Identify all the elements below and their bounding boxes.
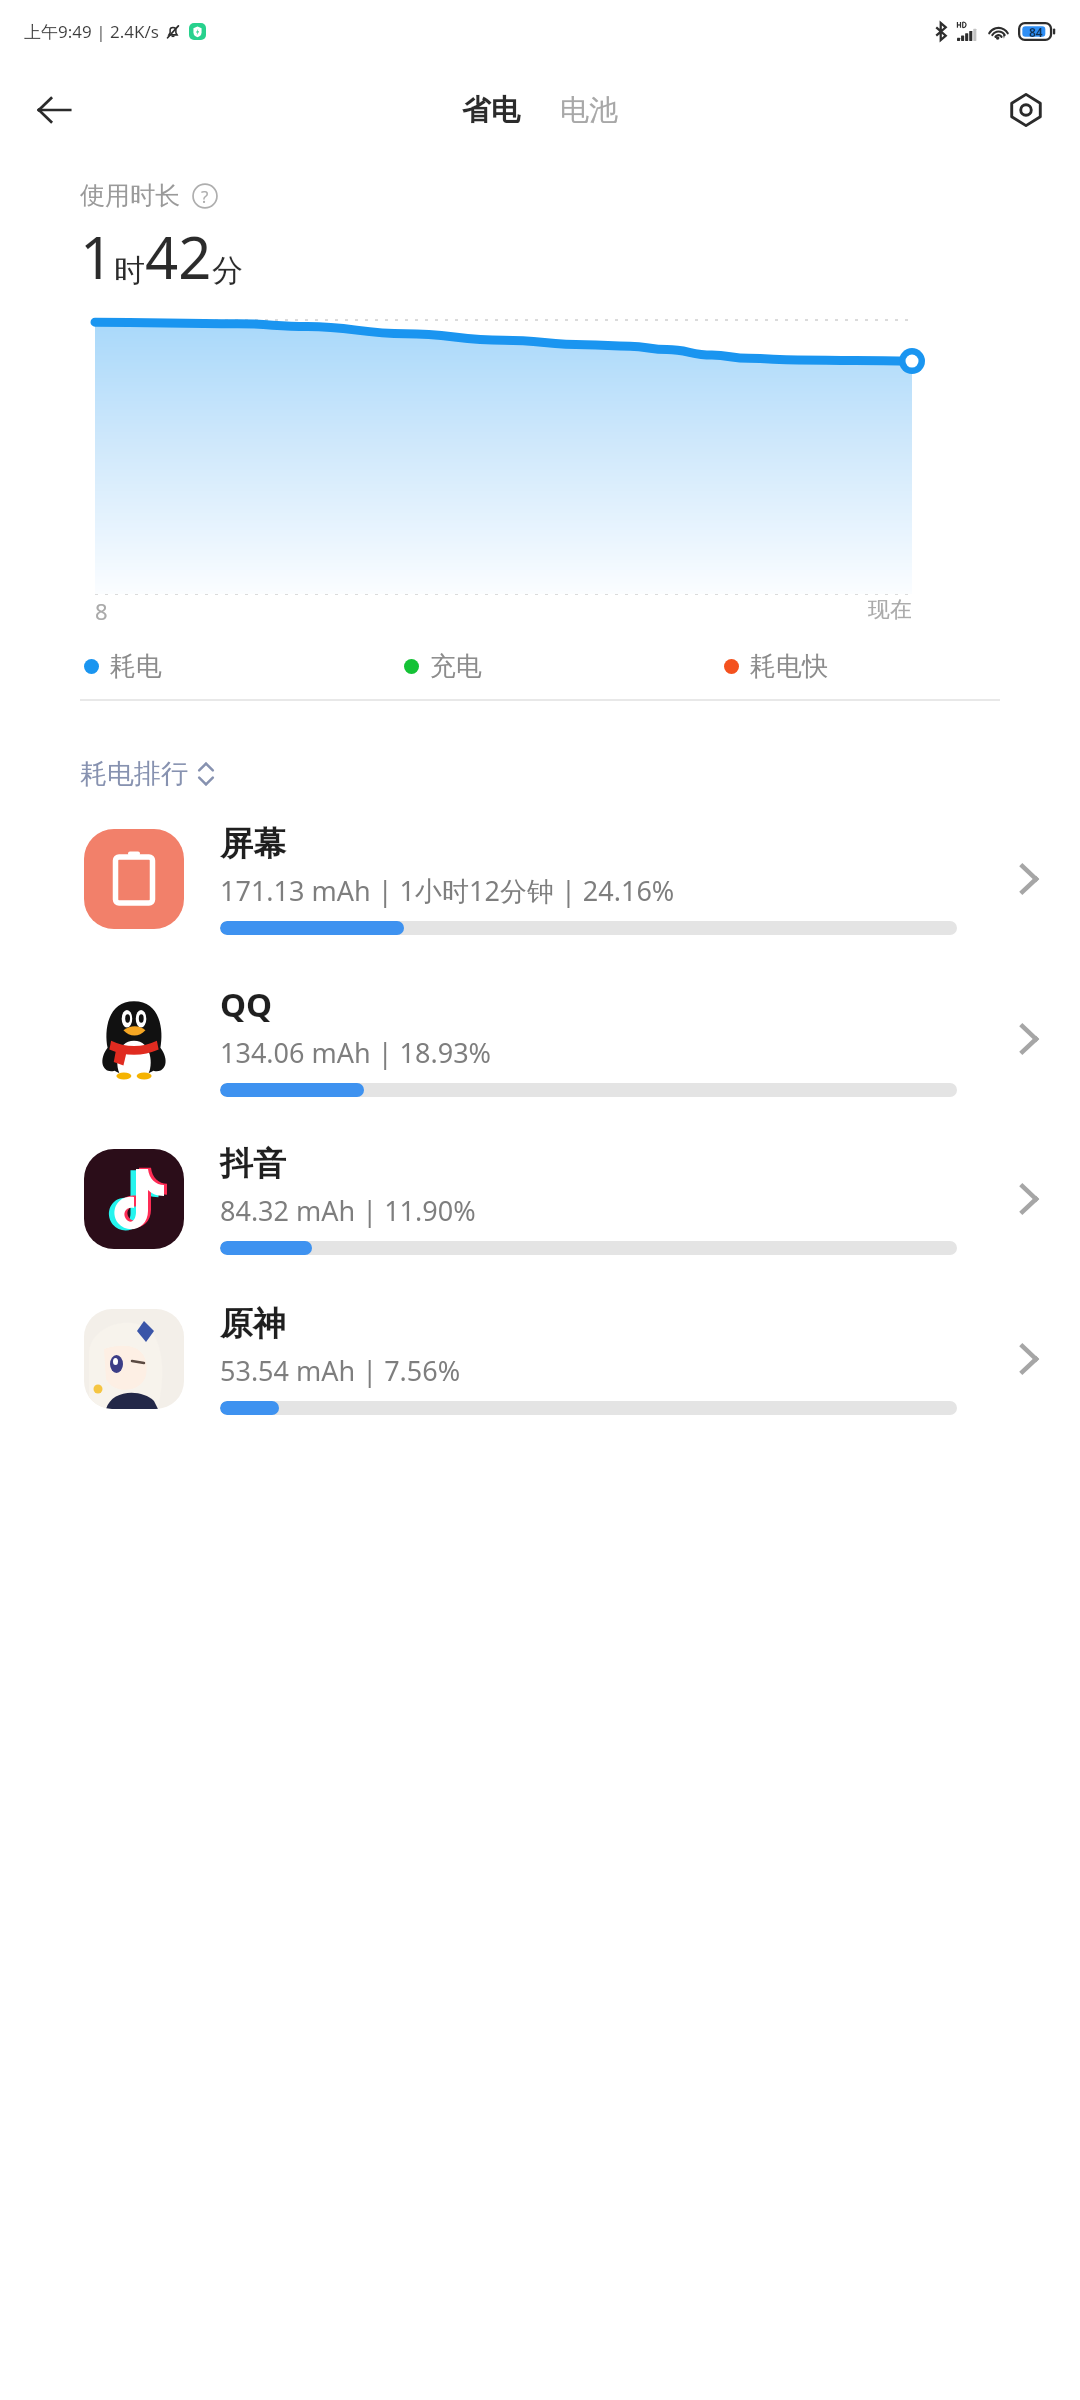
staticText: QQ: [220, 982, 273, 1027]
staticText: 8: [95, 596, 108, 626]
staticText: 1: [80, 217, 114, 296]
staticText: 充电: [430, 650, 482, 683]
button[interactable]: 原神: [0, 1279, 1080, 1439]
staticText: 原神: [220, 1303, 286, 1345]
button[interactable]: 抖音: [0, 1119, 1080, 1279]
staticText: 屏幕: [220, 823, 286, 865]
button[interactable]: 返回: [22, 78, 86, 142]
staticText: 53.54 mAh | 7.56%: [220, 1352, 461, 1389]
button[interactable]: 说明: [190, 181, 220, 211]
staticText: 抖音: [220, 1143, 286, 1185]
button[interactable]: 设置: [994, 78, 1058, 142]
button[interactable]: 耗电排行: [74, 749, 221, 799]
staticText: 电池: [560, 92, 618, 129]
staticText: 84.32 mAh | 11.90%: [220, 1192, 476, 1229]
staticText: 上午9:49 | 2.4K/s: [24, 20, 159, 43]
button[interactable]: 屏幕: [0, 799, 1080, 959]
staticText: 84: [1029, 24, 1043, 40]
staticText: 分: [212, 251, 243, 290]
staticText: 耗电: [110, 650, 162, 683]
button[interactable]: QQ: [0, 959, 1080, 1119]
staticText: ?: [201, 185, 209, 208]
staticText: 现在: [868, 596, 912, 624]
button[interactable]: 电池: [554, 86, 624, 135]
staticText: 使用时长: [80, 180, 180, 211]
staticText: 171.13 mAh | 1小时12分钟 | 24.16%: [220, 872, 675, 909]
staticText: 时: [114, 251, 145, 290]
staticText: 耗电快: [750, 650, 828, 683]
staticText: 省电: [462, 92, 520, 129]
button[interactable]: 省电: [456, 86, 526, 135]
staticText: 耗电排行: [80, 757, 188, 791]
staticText: 42: [145, 217, 212, 296]
staticText: 134.06 mAh | 18.93%: [220, 1034, 492, 1071]
